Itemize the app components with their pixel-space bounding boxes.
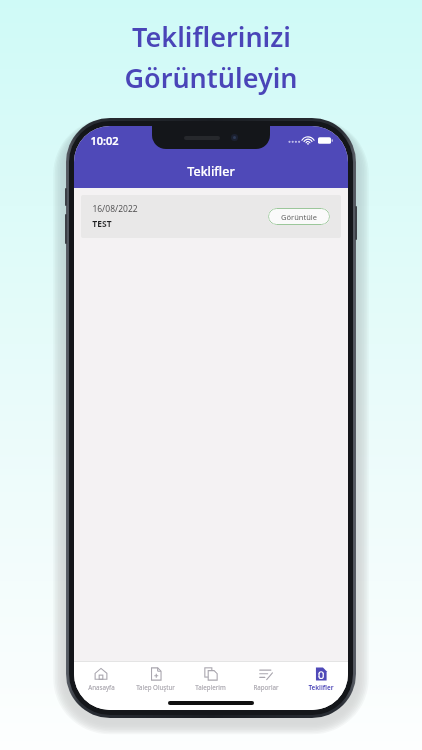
button[interactable]: Raporlar	[238, 662, 293, 696]
staticText: Görüntüleyin	[124, 59, 298, 96]
staticText: Talep Oluştur	[136, 683, 175, 691]
button[interactable]: 16/08/2022	[81, 195, 341, 238]
staticText: Tekliflerinizi	[132, 18, 291, 55]
staticText: Teklifler	[187, 163, 235, 180]
staticText: Raporlar	[253, 683, 279, 691]
staticText: 16/08/2022	[92, 203, 138, 215]
button[interactable]: Teklifler	[293, 662, 348, 696]
staticText: Taleplerim	[195, 683, 226, 691]
button[interactable]: Talep Oluştur	[128, 662, 183, 696]
staticText: TEST	[92, 218, 112, 230]
staticText: Teklifler	[308, 683, 334, 691]
staticText: Anasayfa	[88, 683, 115, 691]
staticText: 10:02	[90, 133, 119, 148]
button[interactable]: Taleplerim	[183, 662, 238, 696]
staticText: Görüntüle	[281, 212, 317, 222]
button[interactable]: Anasayfa	[74, 662, 128, 696]
button[interactable]: Görüntüle	[268, 208, 330, 225]
